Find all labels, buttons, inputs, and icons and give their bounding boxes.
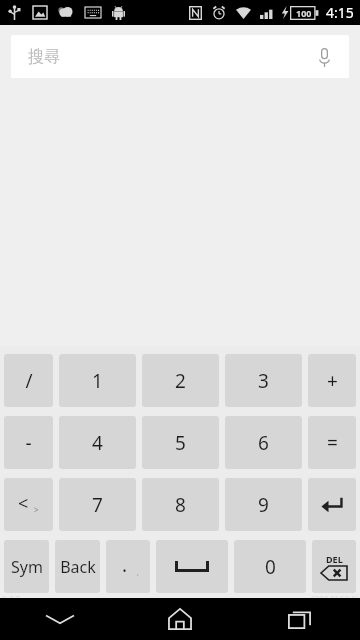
button[interactable]: = [308, 416, 356, 469]
button[interactable]: Enter [308, 478, 356, 531]
staticText: - [25, 430, 32, 456]
staticText: (20141104) [311, 593, 358, 598]
staticText: 1 [92, 368, 103, 394]
button[interactable]: 1 [59, 354, 136, 407]
button[interactable]: 6 [225, 416, 302, 469]
button[interactable]: Sym [4, 540, 49, 593]
button[interactable]: 9 [225, 478, 302, 531]
staticText: 6 [258, 430, 269, 456]
button[interactable]: Hide keyboard [0, 598, 120, 640]
button[interactable]: 2 [142, 354, 219, 407]
button[interactable]: 4 [59, 416, 136, 469]
staticText: 5 [175, 430, 186, 456]
staticText: / [25, 368, 33, 394]
button[interactable]: Voice search [311, 44, 337, 70]
button[interactable]: 5 [142, 416, 219, 469]
button[interactable]: 3 [225, 354, 302, 407]
button[interactable]: Back [55, 540, 100, 593]
staticText: 7 [92, 492, 103, 518]
button[interactable]: Delete [312, 540, 356, 593]
button[interactable]: Home [120, 598, 240, 640]
button[interactable]: 搜尋 [11, 35, 349, 78]
staticText: , [137, 568, 139, 578]
staticText: 搜尋 [28, 47, 60, 67]
staticText: 100 [296, 7, 312, 19]
button[interactable]: - [4, 416, 53, 469]
staticText: < [18, 491, 29, 515]
staticText: DEL [326, 553, 343, 565]
button[interactable]: Recent apps [240, 598, 360, 640]
staticText: + [327, 368, 338, 394]
button[interactable]: 7 [59, 478, 136, 531]
staticText: 3 [258, 368, 269, 394]
staticText: 8 [175, 492, 186, 518]
staticText: 4 [92, 430, 103, 456]
button[interactable]: Space [156, 540, 228, 593]
staticText: 0 [265, 554, 276, 580]
button[interactable]: 0 [234, 540, 306, 593]
button[interactable]: + [308, 354, 356, 407]
staticText: Sym [11, 556, 43, 578]
staticText: 9 [258, 492, 269, 518]
button[interactable]: < [4, 478, 53, 531]
staticText: 4:15 [326, 3, 354, 22]
button[interactable]: / [4, 354, 53, 407]
staticText: Back [60, 556, 96, 578]
staticText: 1.17 [2, 593, 20, 598]
staticText: 2 [175, 368, 186, 394]
button[interactable]: 8 [142, 478, 219, 531]
staticText: . [122, 552, 128, 576]
button[interactable]: . [106, 540, 150, 593]
staticText: = [327, 430, 338, 456]
staticText: > [34, 504, 39, 515]
